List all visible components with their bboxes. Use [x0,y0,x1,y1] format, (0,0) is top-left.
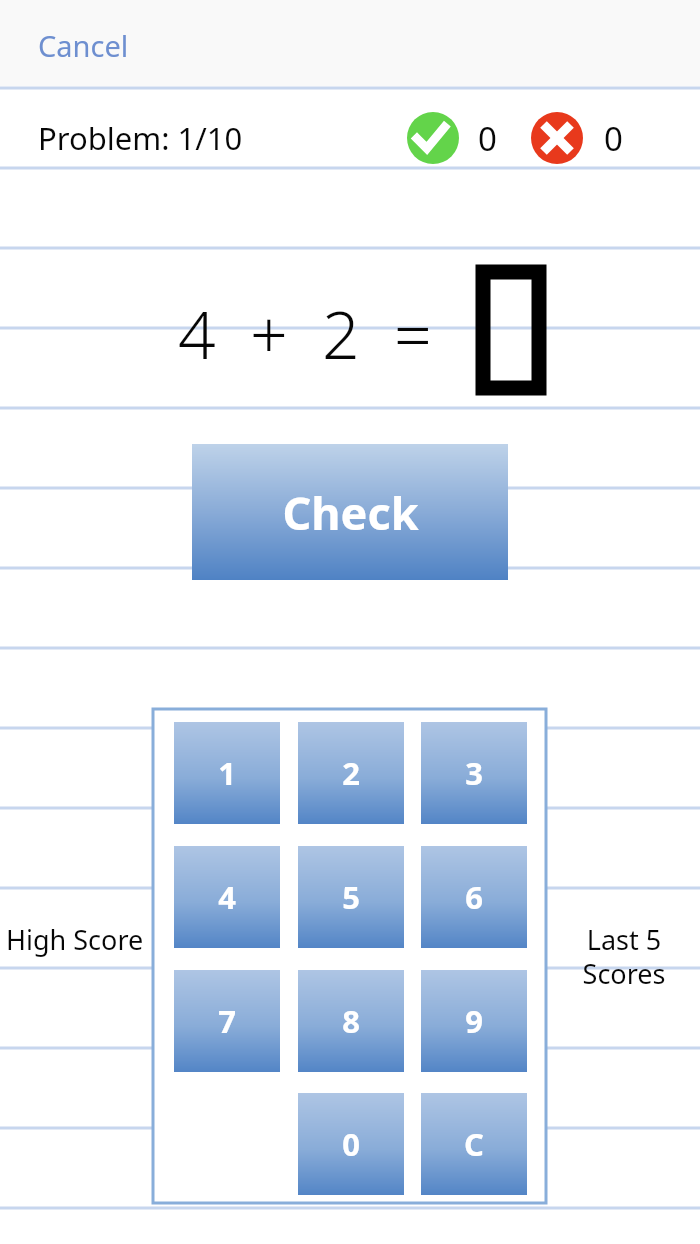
staticText: 2 [342,752,360,794]
button[interactable]: 0 [298,1093,404,1195]
button[interactable]: C [421,1093,527,1195]
staticText: C [464,1123,484,1165]
button[interactable]: 9 [421,970,527,1072]
button[interactable]: Check [192,444,508,580]
button[interactable]: Cancel [22,16,113,55]
staticText: 4 [218,876,236,918]
button[interactable]: 6 [421,846,527,948]
staticText: 0 [604,116,623,161]
button[interactable] [483,272,539,388]
staticText: Check [282,482,419,543]
staticText: 6 [465,876,483,918]
other: Wrong answers [528,112,586,164]
staticText: 0 [342,1123,360,1165]
button[interactable]: 5 [298,846,404,948]
staticText: 4 + 2 = [178,288,432,378]
staticText: 3 [465,752,483,794]
staticText: 7 [218,1000,236,1042]
staticText: 1 [218,752,236,794]
staticText: High Score [6,921,154,958]
button[interactable]: 7 [174,970,280,1072]
staticText: 9 [465,1000,483,1042]
staticText: 0 [478,116,497,161]
button[interactable]: 4 [174,846,280,948]
other: Correct answers [404,112,462,164]
button[interactable]: 1 [174,722,280,824]
staticText: Cancel [38,26,129,65]
button[interactable]: 8 [298,970,404,1072]
staticText: Problem: 1/10 [38,117,243,159]
staticText: 8 [342,1000,360,1042]
staticText: 5 [342,876,360,918]
button[interactable]: 3 [421,722,527,824]
button[interactable]: 2 [298,722,404,824]
staticText: Last 5 Scores [548,921,700,992]
